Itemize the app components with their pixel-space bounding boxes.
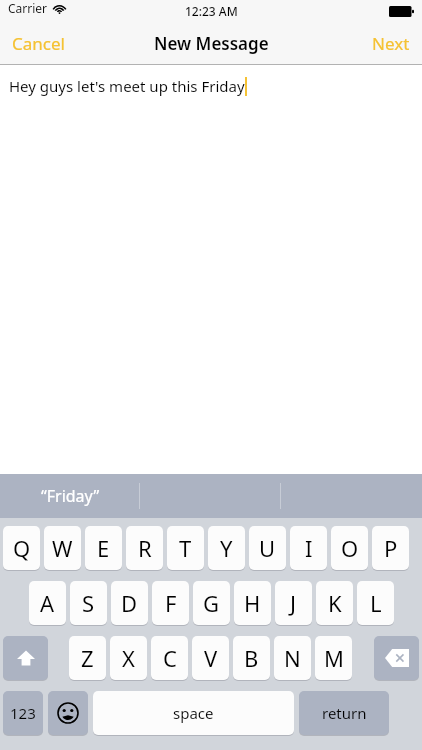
- button[interactable]: Y: [208, 526, 245, 570]
- button[interactable]: G: [193, 581, 230, 625]
- button[interactable]: R: [126, 526, 163, 570]
- staticText: Q: [13, 533, 31, 563]
- button[interactable]: Q: [3, 526, 40, 570]
- button[interactable]: X: [110, 636, 147, 680]
- staticText: G: [203, 588, 220, 618]
- staticText: 123: [10, 703, 36, 723]
- staticText: R: [138, 533, 152, 563]
- button[interactable]: W: [44, 526, 81, 570]
- staticText: L: [370, 588, 382, 618]
- button[interactable]: B: [233, 636, 270, 680]
- button[interactable]: A: [29, 581, 66, 625]
- staticText: Hey guys let's meet up this Friday: [9, 76, 245, 96]
- staticText: U: [259, 533, 276, 563]
- staticText: Cancel: [12, 32, 65, 55]
- staticText: E: [97, 533, 110, 563]
- button[interactable]: Cancel: [0, 24, 77, 63]
- staticText: Y: [220, 533, 233, 563]
- button[interactable]: Z: [69, 636, 106, 680]
- staticText: M: [324, 643, 344, 673]
- button[interactable]: K: [316, 581, 353, 625]
- button[interactable]: P: [372, 526, 409, 570]
- staticText: return: [322, 703, 367, 723]
- staticText: H: [244, 588, 261, 618]
- button[interactable]: [48, 691, 88, 735]
- button[interactable]: [374, 636, 419, 680]
- button[interactable]: O: [331, 526, 368, 570]
- staticText: Z: [81, 643, 94, 673]
- button[interactable]: return: [299, 691, 389, 735]
- staticText: “Friday”: [41, 485, 100, 507]
- staticText: N: [284, 643, 301, 673]
- button[interactable]: J: [275, 581, 312, 625]
- staticText: K: [328, 588, 342, 618]
- button[interactable]: E: [85, 526, 122, 570]
- staticText: B: [244, 643, 259, 673]
- staticText: D: [121, 588, 138, 618]
- staticText: New Message: [154, 32, 269, 55]
- button[interactable]: N: [274, 636, 311, 680]
- button[interactable]: L: [357, 581, 394, 625]
- button[interactable]: space: [93, 691, 294, 735]
- button[interactable]: 123: [3, 691, 43, 735]
- button[interactable]: H: [234, 581, 271, 625]
- button[interactable]: “Friday”: [0, 474, 140, 518]
- staticText: C: [163, 643, 177, 673]
- button[interactable]: T: [167, 526, 204, 570]
- staticText: F: [165, 588, 177, 618]
- staticText: P: [384, 533, 398, 563]
- staticText: Carrier: [8, 0, 48, 16]
- button[interactable]: Next: [360, 24, 422, 63]
- staticText: V: [204, 643, 218, 673]
- button[interactable]: C: [151, 636, 188, 680]
- button[interactable]: F: [152, 581, 189, 625]
- staticText: Next: [372, 32, 410, 55]
- button[interactable]: S: [70, 581, 107, 625]
- button[interactable]: I: [290, 526, 327, 570]
- staticText: S: [82, 588, 95, 618]
- staticText: J: [290, 588, 297, 618]
- button[interactable]: V: [192, 636, 229, 680]
- staticText: A: [40, 588, 55, 618]
- staticText: 12:23 AM: [185, 3, 238, 19]
- staticText: T: [179, 533, 192, 563]
- staticText: X: [122, 643, 135, 673]
- staticText: O: [341, 533, 359, 563]
- button[interactable]: D: [111, 581, 148, 625]
- button[interactable]: [3, 636, 48, 680]
- staticText: I: [305, 533, 313, 563]
- button[interactable]: M: [315, 636, 352, 680]
- staticText: W: [52, 533, 73, 563]
- button[interactable]: U: [249, 526, 286, 570]
- staticText: space: [173, 703, 214, 723]
